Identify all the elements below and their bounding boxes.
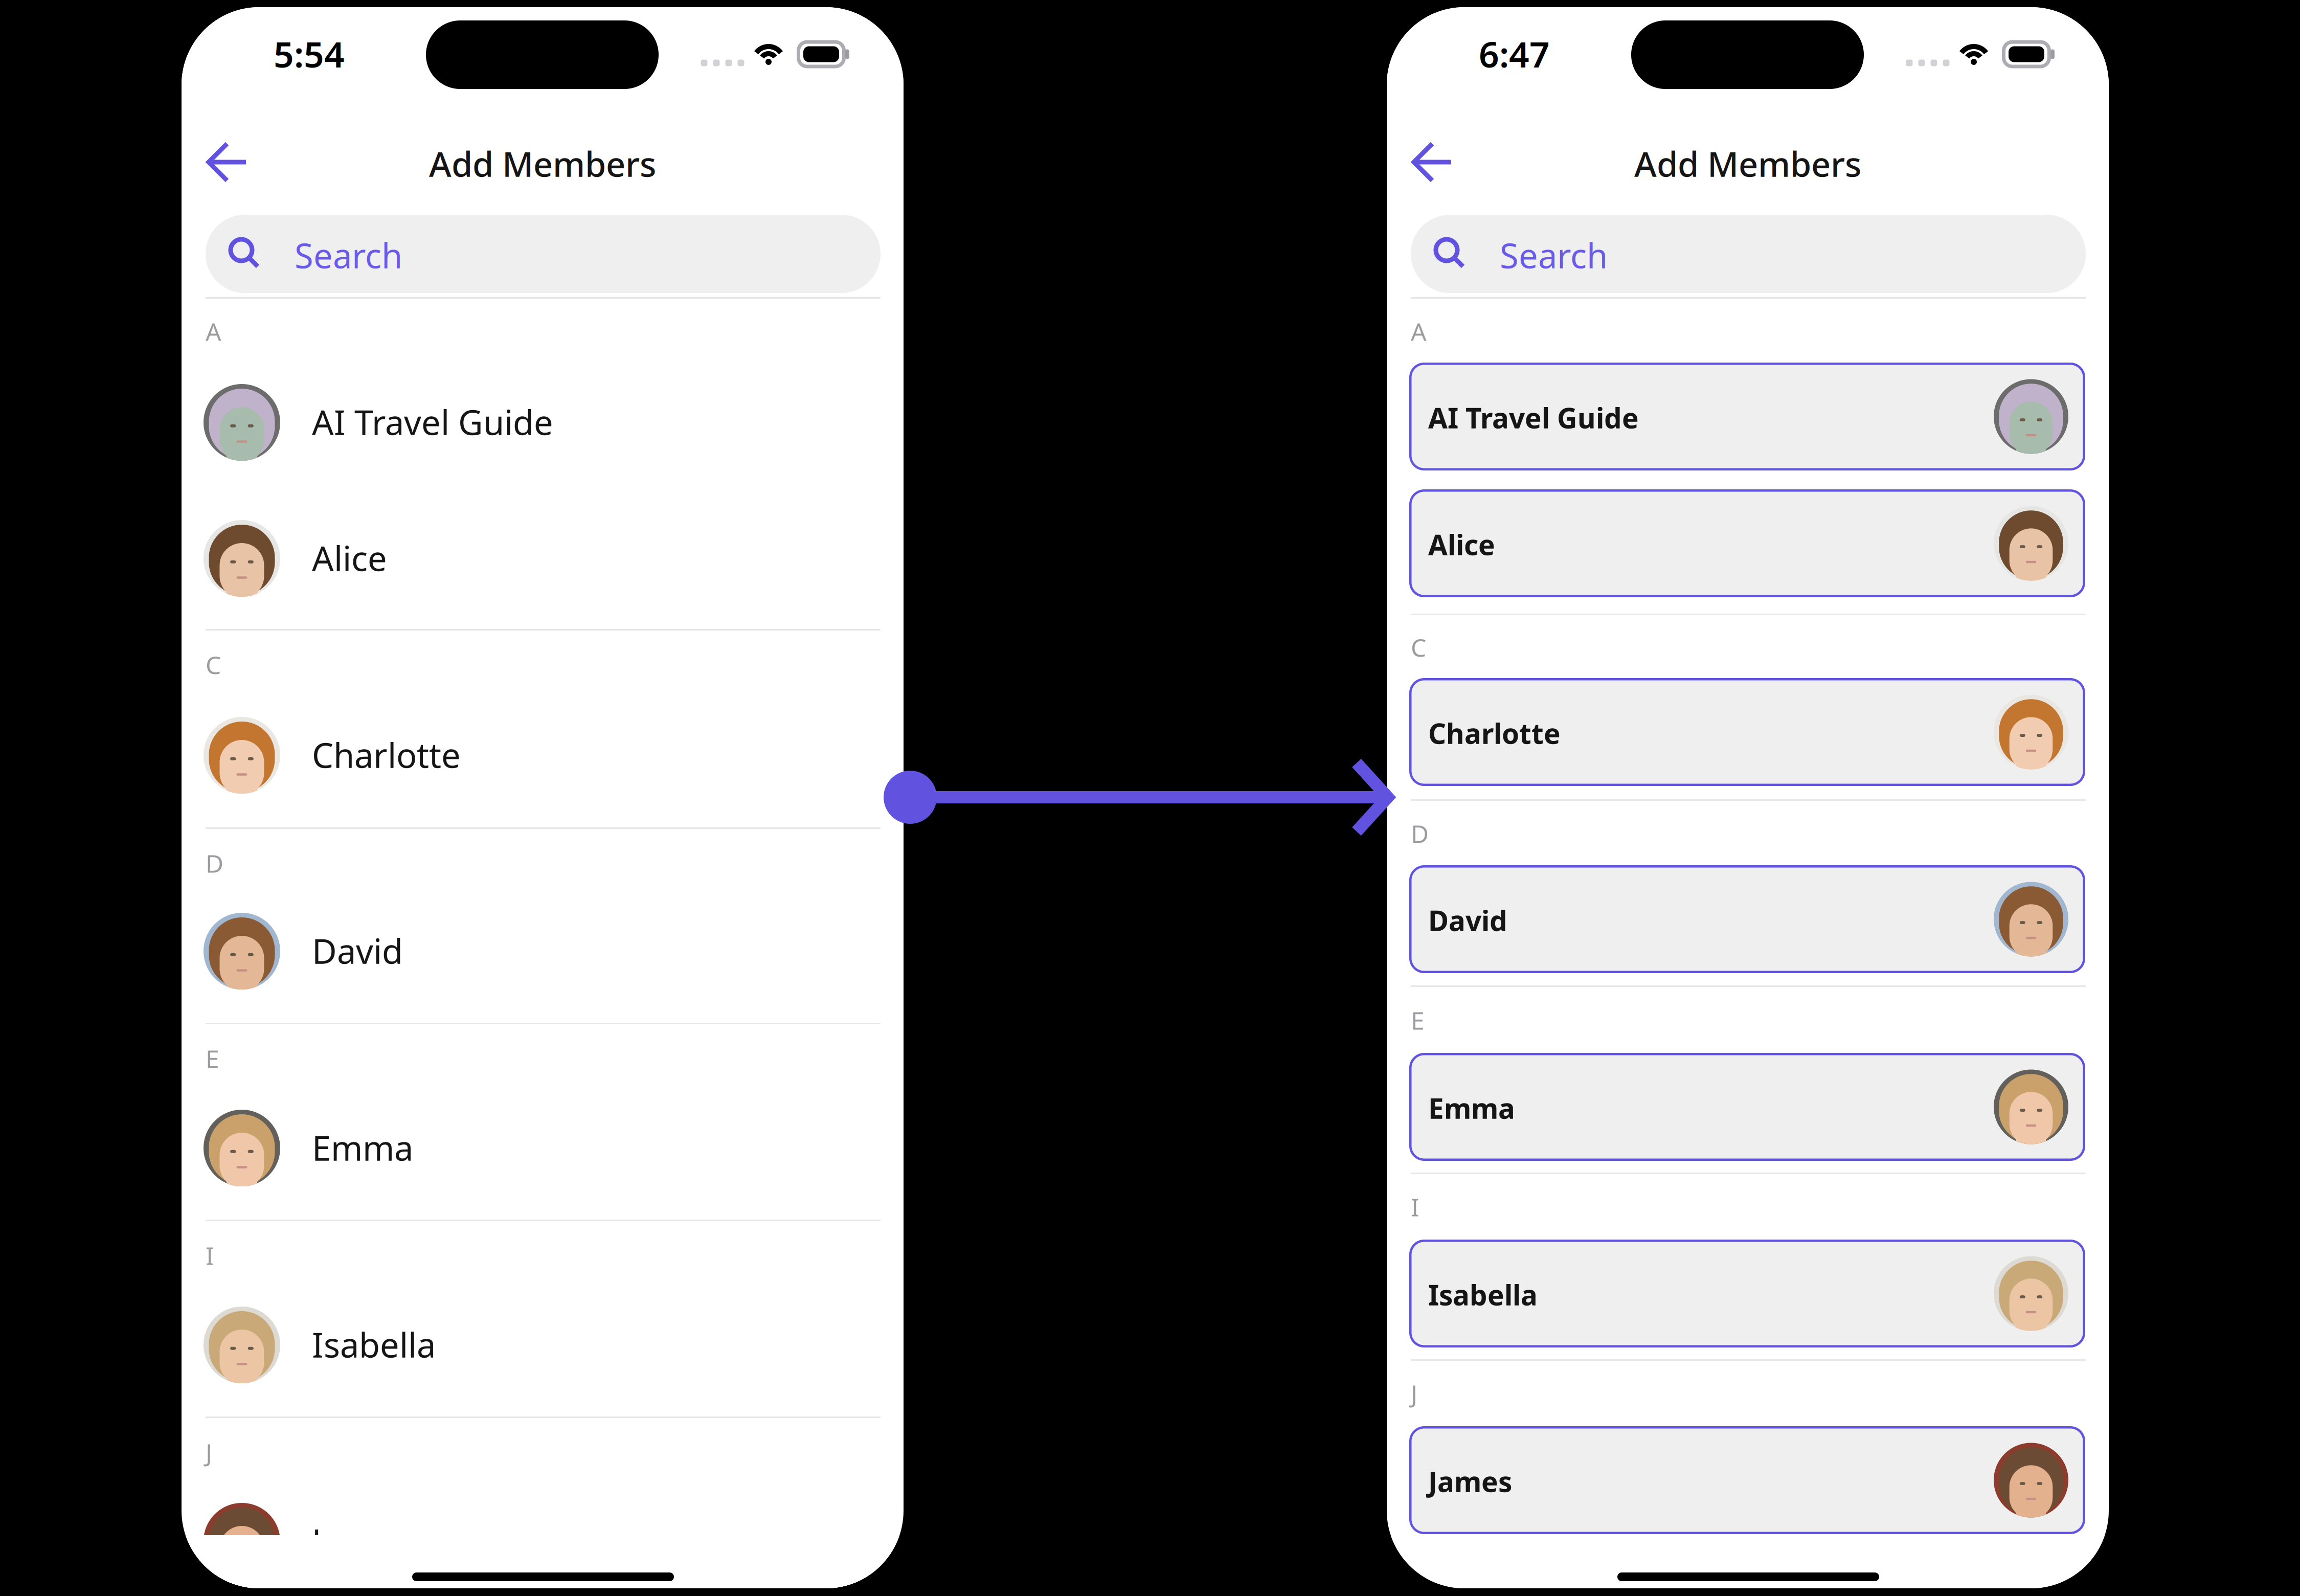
button[interactable]: Search <box>206 215 881 293</box>
staticText: J <box>206 1436 212 1469</box>
button[interactable]: Alice <box>1409 489 2085 597</box>
staticText: E <box>206 1042 219 1075</box>
button[interactable]: Emma <box>1409 1053 2085 1161</box>
button[interactable]: James <box>204 1480 882 1596</box>
staticText: Charlotte <box>312 732 461 777</box>
staticText: Isabella <box>312 1322 436 1367</box>
button[interactable]: Back <box>198 124 275 200</box>
button[interactable]: David <box>1409 865 2085 973</box>
button[interactable]: Alice <box>204 497 882 620</box>
button[interactable]: Isabella <box>204 1284 882 1406</box>
button[interactable]: Back <box>1404 124 1480 200</box>
staticText: Isabella <box>1428 1276 1538 1313</box>
staticText: AI Travel Guide <box>1428 399 1639 436</box>
staticText: Emma <box>1428 1089 1515 1126</box>
staticText: James <box>312 1518 408 1563</box>
staticText: J <box>1411 1377 1417 1410</box>
button[interactable]: AI Travel Guide <box>204 361 882 484</box>
button[interactable]: Search <box>1411 215 2086 293</box>
staticText: C <box>1411 631 1426 664</box>
staticText: James <box>1428 1463 1512 1500</box>
staticText: E <box>1411 1004 1425 1036</box>
button[interactable]: Emma <box>204 1087 882 1209</box>
staticText: Add Members <box>1634 141 1861 186</box>
staticText: I <box>1411 1191 1419 1223</box>
staticText: Charlotte <box>1428 714 1561 752</box>
staticText: D <box>206 847 223 879</box>
button[interactable]: AI Travel Guide <box>1409 363 2085 470</box>
staticText: I <box>206 1239 214 1272</box>
button[interactable]: Charlotte <box>204 694 882 817</box>
staticText: AI Travel Guide <box>312 399 553 444</box>
staticText: D <box>1411 817 1429 850</box>
staticText: Search <box>295 233 402 278</box>
staticText: Emma <box>312 1125 413 1170</box>
staticText: C <box>206 648 221 681</box>
button[interactable]: James <box>1409 1426 2085 1534</box>
staticText: 6:47 <box>1479 30 1550 77</box>
staticText: David <box>1428 902 1507 939</box>
staticText: A <box>206 315 221 348</box>
staticText: David <box>312 928 403 973</box>
button[interactable]: Charlotte <box>1409 678 2085 786</box>
staticText: Add Members <box>429 141 656 186</box>
staticText: 5:54 <box>274 30 345 77</box>
staticText: Alice <box>1428 526 1495 563</box>
button[interactable]: Isabella <box>1409 1240 2085 1347</box>
staticText: Alice <box>312 535 387 581</box>
staticText: Search <box>1500 233 1608 278</box>
staticText: A <box>1411 315 1427 348</box>
button[interactable]: David <box>204 890 882 1013</box>
